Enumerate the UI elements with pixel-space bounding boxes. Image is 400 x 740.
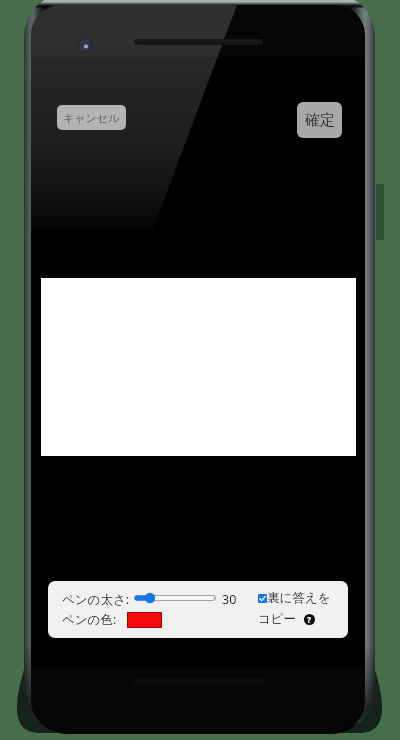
staticText: 30 [222,591,237,608]
button[interactable]: 確定 [297,102,342,138]
staticText: ペンの色: [62,611,117,628]
staticText: キャンセル [63,111,120,125]
staticText: ? [307,614,312,625]
button[interactable]: Pen thickness [136,590,216,606]
staticText: コピー [258,611,297,627]
button[interactable]: Pen colour [127,612,162,628]
button[interactable]: キャンセル [57,105,126,130]
staticText: 確定 [305,111,335,130]
staticText: ペンの太さ: [62,591,130,608]
button[interactable]: Help [304,614,315,625]
button[interactable]: 裏に答えを [258,590,331,606]
staticText: 裏に答えを [267,590,331,606]
